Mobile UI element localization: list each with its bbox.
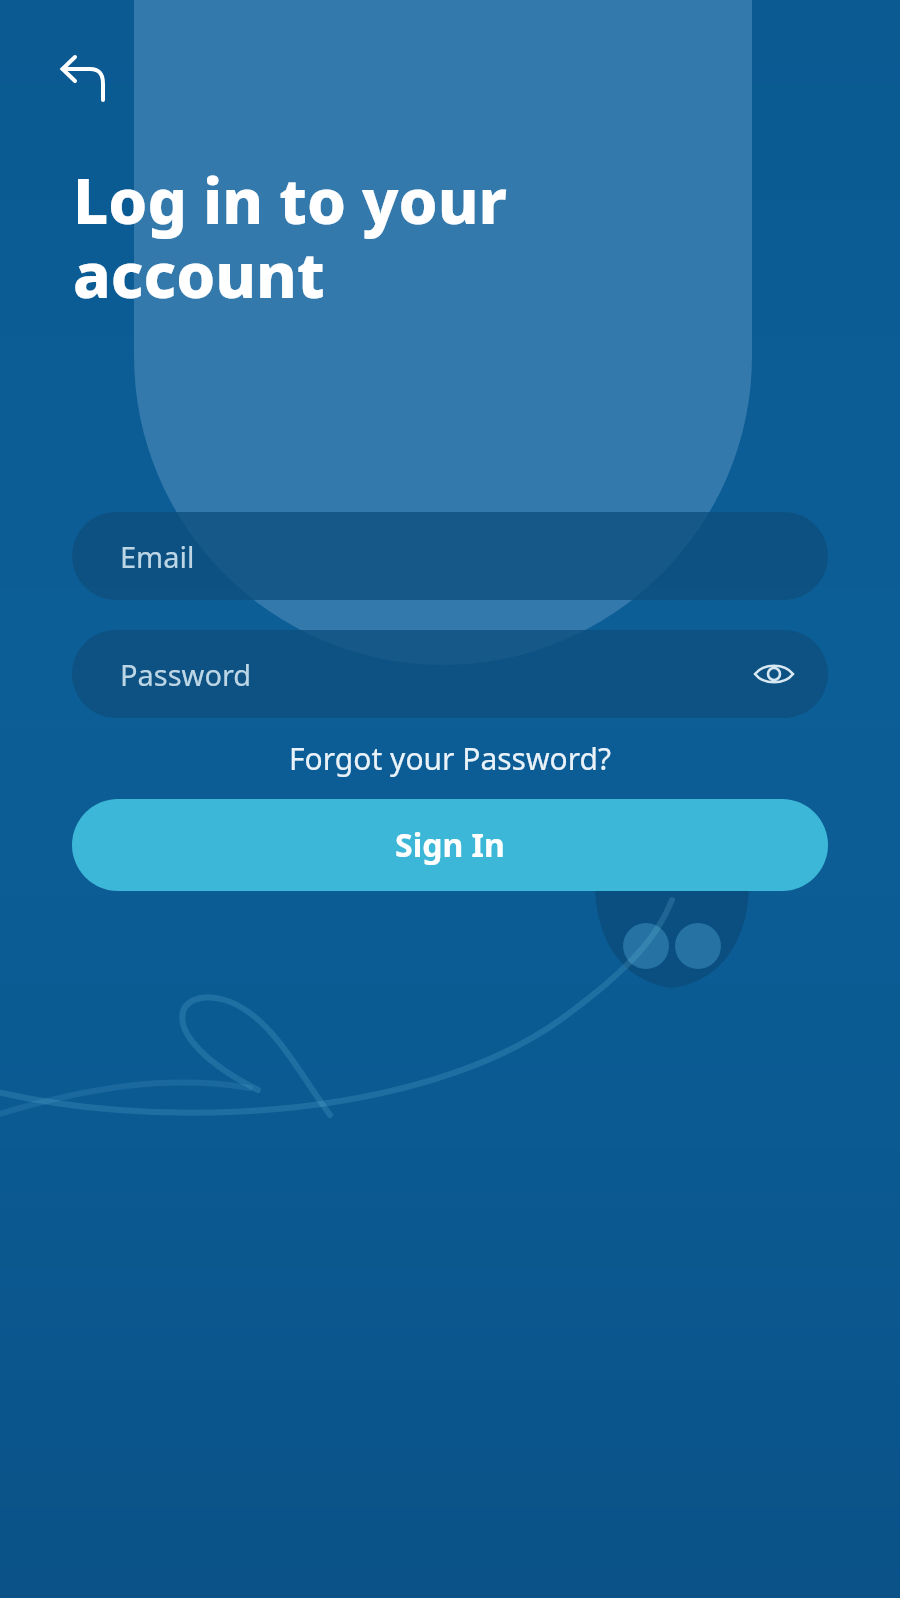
- button[interactable]: Back: [46, 38, 124, 116]
- button[interactable]: Show password: [742, 642, 806, 706]
- staticText: Forgot your Password?: [289, 738, 611, 779]
- staticText: Email: [120, 537, 195, 576]
- staticText: Sign In: [395, 823, 505, 867]
- button[interactable]: Sign In: [72, 799, 828, 891]
- button[interactable]: Password: [72, 630, 828, 718]
- staticText: Log in to your account: [73, 158, 507, 316]
- staticText: Password: [120, 655, 252, 694]
- button[interactable]: Forgot your Password?: [275, 732, 625, 785]
- button[interactable]: Email: [72, 512, 828, 600]
